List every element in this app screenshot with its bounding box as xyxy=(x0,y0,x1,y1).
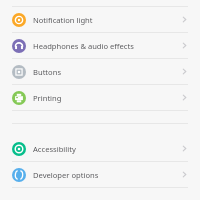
button[interactable]: Headphones & audio effects xyxy=(0,33,200,58)
staticText: Developer options xyxy=(33,170,181,180)
staticText: Printing xyxy=(33,93,181,103)
button[interactable]: Developer options xyxy=(0,162,200,187)
button[interactable]: Accessibility xyxy=(0,136,200,161)
staticText: Buttons xyxy=(33,67,181,77)
staticText: Notification light xyxy=(33,15,181,25)
button[interactable]: Printing xyxy=(0,85,200,110)
button[interactable]: Notification light xyxy=(0,7,200,32)
staticText: Accessibility xyxy=(33,144,181,154)
button[interactable]: Buttons xyxy=(0,59,200,84)
staticText: Headphones & audio effects xyxy=(33,41,181,51)
